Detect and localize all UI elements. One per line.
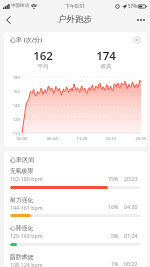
staticText: 平均 (23, 63, 63, 70)
staticText: 162 (5, 88, 20, 94)
staticText: 145 (5, 102, 20, 108)
staticText: 144-161 bpm (10, 204, 43, 211)
staticText: 13:28 (73, 135, 91, 141)
staticText: 108-124 bpm (10, 261, 43, 267)
staticText: 5% (111, 232, 119, 239)
staticText: 脂肪燃烧 (10, 253, 34, 260)
button[interactable]: Heart rate info (132, 35, 142, 45)
button[interactable]: Back (2, 13, 15, 26)
staticText: 20:23 (124, 175, 138, 182)
staticText: 20:12 (102, 135, 120, 141)
staticText: 耐力强化 (10, 196, 34, 203)
staticText: 128 (5, 116, 20, 122)
staticText: 162 (23, 48, 63, 64)
staticText: 26:56 (132, 135, 147, 141)
staticText: 16% (108, 203, 119, 210)
staticText: 心率 (次/分) (10, 35, 43, 43)
staticText: 04:30 (124, 203, 138, 210)
staticText: 75% (108, 175, 119, 182)
button[interactable] (10, 243, 140, 246)
staticText: 户外跑步 (0, 14, 150, 25)
staticText: 心率区间 (10, 156, 35, 164)
staticText: 中国移动 (11, 3, 29, 9)
staticText: 162-180 bpm (10, 175, 43, 182)
staticText: 无氧极限 (10, 167, 34, 174)
button[interactable] (10, 186, 140, 189)
staticText: 57% (128, 3, 137, 9)
staticText: 00:00 (13, 135, 31, 141)
staticText: 00:22 (124, 260, 138, 267)
staticText: 1% (111, 260, 119, 267)
button[interactable] (10, 214, 140, 217)
staticText: 心肺强化 (10, 224, 34, 231)
button[interactable]: More options (134, 13, 147, 26)
staticText: 174 (86, 48, 126, 64)
staticText: 180 (5, 74, 20, 80)
staticText: 125-143 bpm (10, 232, 43, 239)
staticText: 01:24 (124, 232, 138, 239)
staticText: 最高 (86, 63, 126, 70)
staticText: 110 (5, 130, 20, 136)
staticText: 下午8:51 (65, 3, 85, 10)
staticText: 06:44 (43, 135, 61, 141)
